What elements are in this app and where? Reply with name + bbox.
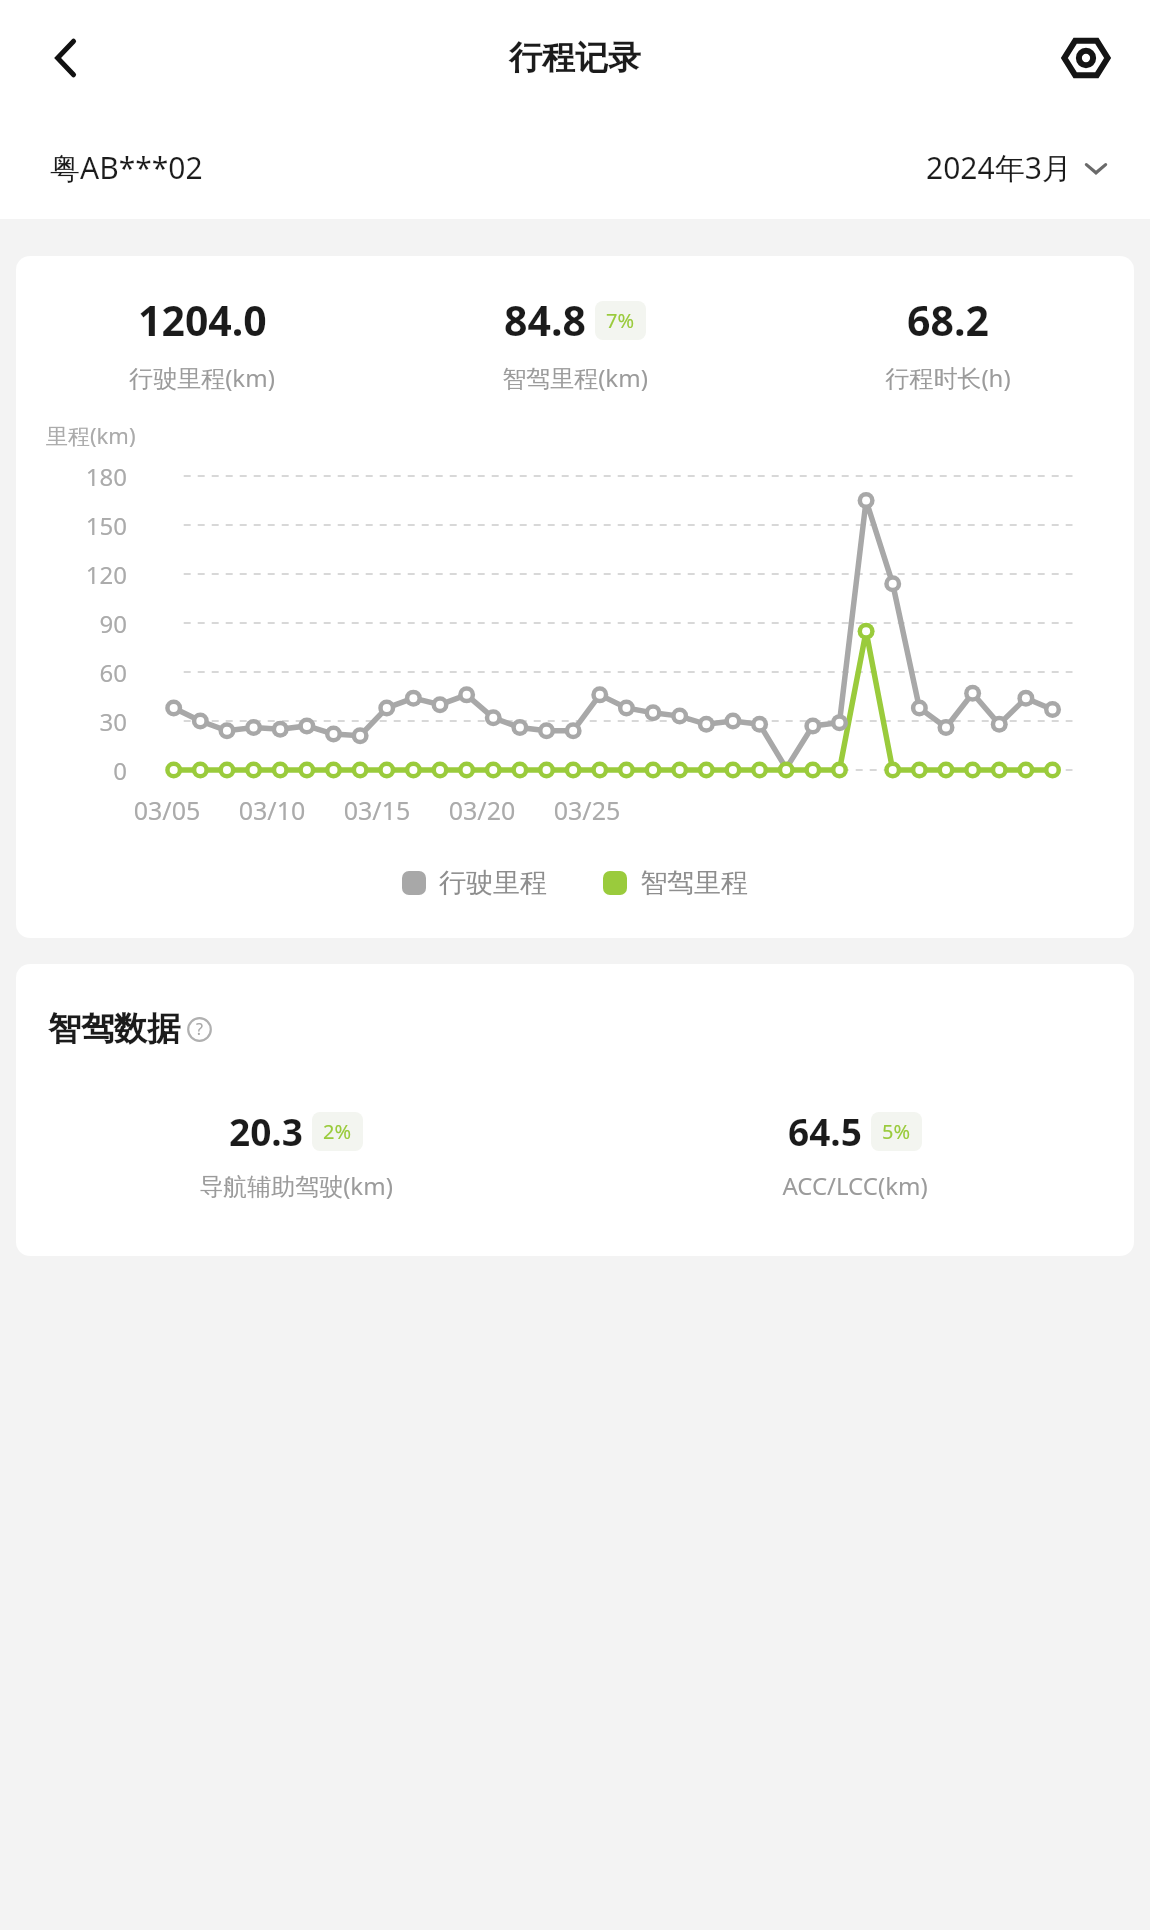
staticText: 03/05: [122, 793, 212, 827]
staticText: 行驶里程(km): [129, 361, 275, 394]
staticText: 粤AB***02: [50, 147, 203, 188]
staticText: 0: [16, 754, 127, 787]
staticText: 68.2: [907, 292, 989, 348]
staticText: 智驾里程(km): [502, 361, 648, 394]
staticText: 行程记录: [509, 37, 641, 79]
staticText: ACC/LCC(km): [782, 1169, 928, 1202]
button[interactable]: 行驶里程: [402, 866, 547, 900]
staticText: 7%: [606, 307, 635, 334]
staticText: 2%: [323, 1118, 352, 1145]
staticText: 180: [16, 460, 127, 493]
staticText: 120: [16, 558, 127, 591]
staticText: 84.8: [504, 292, 586, 348]
staticText: 20.3: [229, 1106, 303, 1156]
button[interactable]: 64.5: [575, 1106, 1134, 1202]
staticText: 2024年3月: [926, 147, 1072, 188]
button[interactable]: 智驾里程: [603, 866, 748, 900]
button[interactable]: 1204.0: [16, 292, 388, 394]
staticText: 行驶里程: [439, 866, 547, 900]
staticText: ?: [196, 1018, 203, 1040]
button[interactable]: Settings: [1054, 26, 1118, 90]
button[interactable]: 84.8: [388, 292, 761, 394]
button[interactable]: 68.2: [761, 292, 1134, 394]
staticText: 5%: [882, 1118, 911, 1145]
staticText: 03/15: [332, 793, 422, 827]
staticText: 64.5: [788, 1106, 862, 1156]
staticText: 03/20: [437, 793, 527, 827]
staticText: 行程时长(h): [885, 361, 1011, 394]
staticText: 150: [16, 509, 127, 542]
button[interactable]: 智驾数据: [48, 1008, 212, 1050]
staticText: 智驾数据: [48, 1008, 180, 1050]
staticText: 1204.0: [138, 292, 267, 348]
staticText: 03/10: [227, 793, 317, 827]
staticText: 智驾里程: [640, 866, 748, 900]
staticText: 90: [16, 607, 127, 640]
button[interactable]: Back: [34, 26, 98, 90]
button[interactable]: 20.3: [16, 1106, 575, 1202]
staticText: 60: [16, 656, 127, 689]
staticText: 03/25: [542, 793, 632, 827]
button[interactable]: 2024年3月: [926, 147, 1108, 188]
staticText: 30: [16, 705, 127, 738]
staticText: 导航辅助驾驶(km): [199, 1169, 393, 1202]
staticText: 里程(km): [46, 420, 136, 450]
